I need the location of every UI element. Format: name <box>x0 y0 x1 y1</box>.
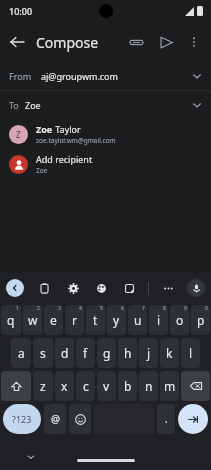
staticText: g <box>103 345 111 361</box>
staticText: r <box>72 312 77 328</box>
button[interactable]: Voice input <box>187 279 205 297</box>
button[interactable]: z <box>33 371 53 401</box>
staticText: d <box>61 345 69 361</box>
staticText: z <box>40 378 46 394</box>
button[interactable]: Themes <box>92 279 110 297</box>
staticText: 4 <box>79 305 82 312</box>
staticText: u <box>134 312 142 328</box>
button[interactable]: i <box>149 305 168 335</box>
staticText: zoe.taylor.wm@gmail.com <box>36 136 116 145</box>
staticText: k <box>166 345 173 361</box>
staticText: @ <box>51 412 60 426</box>
button[interactable]: c <box>76 371 95 401</box>
button[interactable]: Z <box>0 119 211 149</box>
button[interactable]: o <box>170 305 189 335</box>
staticText: Compose <box>36 33 99 52</box>
button[interactable]: Settings <box>64 279 82 297</box>
button[interactable]: p <box>191 305 210 335</box>
staticText: 9 <box>184 305 187 312</box>
button[interactable]: Period <box>157 404 175 434</box>
staticText: 0 <box>205 305 208 312</box>
button[interactable]: b <box>118 371 137 401</box>
button[interactable]: To <box>0 91 211 119</box>
button[interactable]: g <box>97 338 116 368</box>
button[interactable]: At sign <box>44 404 66 434</box>
button[interactable]: Next field <box>178 404 208 434</box>
staticText: x <box>61 378 68 394</box>
button[interactable]: u <box>128 305 147 335</box>
button[interactable]: n <box>139 371 158 401</box>
button[interactable]: d <box>55 338 74 368</box>
button[interactable]: e <box>44 305 63 335</box>
staticText: l <box>189 345 193 361</box>
button[interactable]: t <box>86 305 105 335</box>
button[interactable]: Clipboard <box>35 279 53 297</box>
staticText: s <box>40 345 46 361</box>
button[interactable]: From <box>0 62 211 90</box>
staticText: c <box>83 378 89 394</box>
button[interactable]: l <box>181 338 200 368</box>
button[interactable]: Back <box>0 25 34 59</box>
button[interactable]: Send <box>151 27 181 57</box>
staticText: w <box>28 312 38 328</box>
staticText: To <box>9 99 19 111</box>
staticText: 2 <box>37 305 40 312</box>
staticText: 1 <box>16 305 19 312</box>
staticText: Add recipient <box>36 153 93 165</box>
staticText: m <box>164 378 176 394</box>
staticText: y <box>113 312 120 328</box>
staticText: 7 <box>142 305 145 312</box>
staticText: t <box>93 312 98 328</box>
staticText: Z <box>16 129 21 140</box>
staticText: a <box>18 345 25 361</box>
button[interactable]: f <box>76 338 95 368</box>
staticText: e <box>50 312 57 328</box>
button[interactable]: More options <box>181 27 207 57</box>
button[interactable]: s <box>33 338 53 368</box>
button[interactable]: v <box>97 371 116 401</box>
button[interactable]: ?123 <box>3 404 41 434</box>
button[interactable]: a <box>11 338 31 368</box>
button[interactable]: x <box>55 371 74 401</box>
button[interactable]: Expand toolbar <box>6 279 24 297</box>
staticText: n <box>145 378 153 394</box>
staticText: ?123 <box>12 413 32 425</box>
staticText: h <box>124 345 132 361</box>
button[interactable]: Add recipient <box>0 149 211 179</box>
button[interactable]: k <box>160 338 179 368</box>
button[interactable]: m <box>160 371 179 401</box>
button[interactable]: Sticker <box>120 279 138 297</box>
button[interactable]: Backspace <box>181 371 210 401</box>
staticText: b <box>124 378 132 394</box>
staticText: 6 <box>121 305 124 312</box>
staticText: o <box>176 312 184 328</box>
staticText: From <box>9 70 32 82</box>
staticText: i <box>157 312 161 328</box>
button[interactable]: h <box>118 338 137 368</box>
staticText: 10:00 <box>9 5 33 17</box>
staticText: j <box>147 345 151 361</box>
button[interactable]: Emoji <box>69 404 91 434</box>
staticText: aj@groupwm.com <box>41 70 118 82</box>
staticText: Zoe <box>25 99 41 111</box>
staticText: q <box>7 312 15 328</box>
button[interactable]: w <box>23 305 42 335</box>
staticText: Zoe <box>36 166 48 175</box>
staticText: v <box>103 378 110 394</box>
staticText: p <box>197 312 205 328</box>
staticText: 8 <box>163 305 166 312</box>
button[interactable]: More <box>159 279 177 297</box>
button[interactable]: Hide keyboard <box>24 450 38 464</box>
button[interactable]: r <box>65 305 84 335</box>
button[interactable]: y <box>107 305 126 335</box>
staticText: Taylor <box>53 123 81 135</box>
staticText: . <box>165 412 168 426</box>
button[interactable]: q <box>1 305 21 335</box>
button[interactable]: Shift <box>1 371 31 401</box>
button[interactable]: Attach file <box>121 27 151 57</box>
staticText: 5 <box>100 305 103 312</box>
staticText: f <box>83 345 88 361</box>
staticText: 3 <box>58 305 61 312</box>
button[interactable]: j <box>139 338 158 368</box>
